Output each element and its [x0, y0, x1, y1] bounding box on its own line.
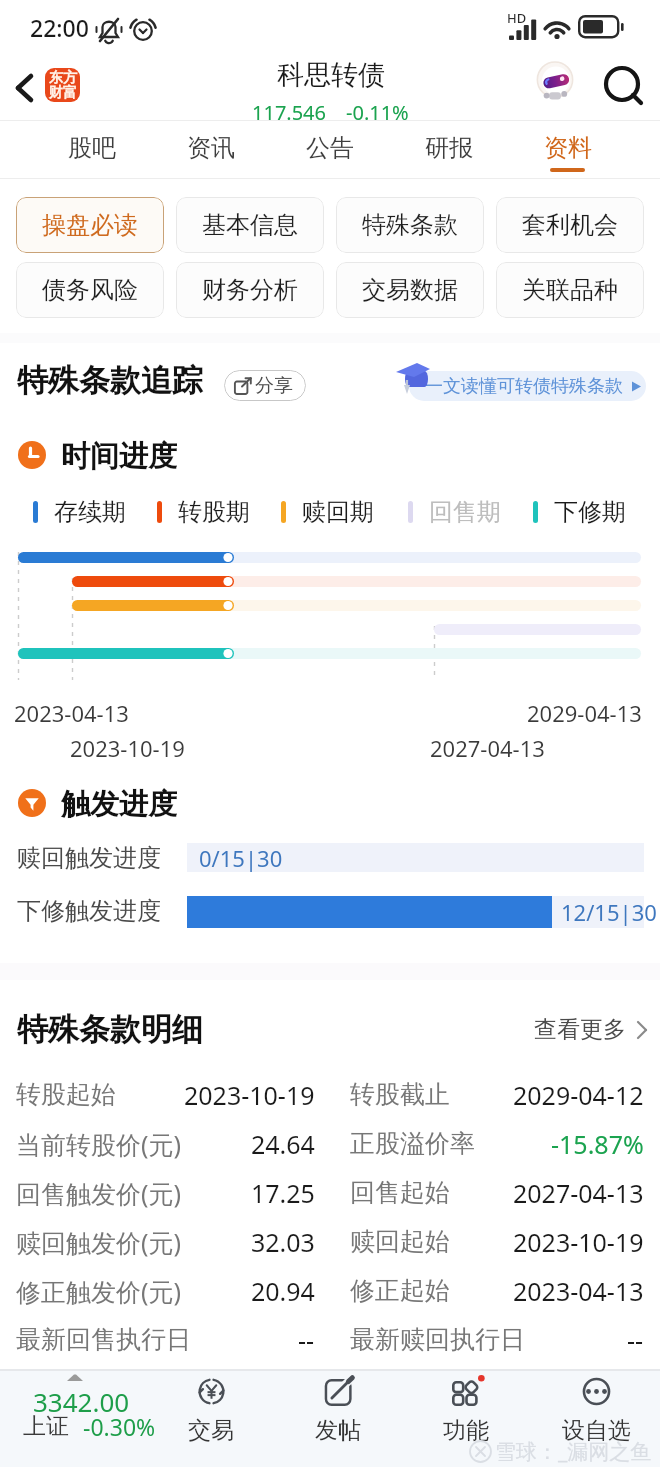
staticText: 正股溢价率: [350, 1128, 475, 1159]
staticText: 赎回起始: [350, 1226, 450, 1257]
staticText: 上证: [23, 1412, 69, 1441]
staticText: 东方 财富: [49, 69, 77, 101]
staticText: 发帖: [315, 1416, 361, 1445]
staticText: 24.64: [251, 1127, 315, 1161]
staticText: -0.30%: [83, 1411, 156, 1442]
staticText: 最新赎回执行日: [350, 1324, 525, 1355]
staticText: 交易: [188, 1416, 234, 1445]
staticText: 分享: [255, 374, 293, 398]
staticText: 赎回期: [302, 497, 374, 527]
staticText: 回售触发价(元): [16, 1176, 182, 1210]
staticText: 资讯: [187, 133, 235, 163]
staticText: 科思转债: [277, 58, 385, 92]
button[interactable]: 资讯: [151, 121, 270, 178]
button[interactable]: 套利机会: [496, 197, 644, 253]
staticText: 转股起始: [16, 1079, 116, 1110]
staticText: 0/15|30: [199, 843, 283, 872]
button[interactable]: 交易数据: [336, 262, 484, 318]
button[interactable]: 股吧: [33, 121, 151, 178]
staticText: --: [298, 1323, 315, 1357]
staticText: 下修触发进度: [17, 896, 161, 926]
staticText: 2029-04-13: [527, 698, 642, 728]
staticText: 特殊条款明细: [17, 1010, 203, 1049]
button[interactable]: 公告: [270, 121, 389, 178]
staticText: 12/15|30: [561, 897, 657, 927]
staticText: 查看更多: [534, 1015, 626, 1044]
staticText: 2023-10-19: [70, 733, 185, 763]
staticText: 赎回触发进度: [17, 843, 161, 873]
staticText: 修正起始: [350, 1275, 450, 1306]
staticText: 20.94: [251, 1274, 315, 1308]
staticText: 2027-04-13: [430, 733, 545, 763]
staticText: 22:00: [30, 12, 89, 43]
button[interactable]: 设自选: [533, 1369, 659, 1467]
staticText: -15.87%: [551, 1127, 644, 1161]
button[interactable]: 一文读懂可转债特殊条款: [409, 371, 646, 401]
staticText: 交易数据: [362, 275, 458, 305]
staticText: 财务分析: [202, 275, 298, 305]
staticText: 最新回售执行日: [16, 1324, 191, 1355]
button[interactable]: Back: [2, 66, 46, 110]
staticText: 修正触发价(元): [16, 1274, 182, 1308]
staticText: 基本信息: [202, 210, 298, 240]
button[interactable]: 查看更多: [534, 1015, 649, 1044]
staticText: 设自选: [562, 1416, 631, 1445]
button[interactable]: 特殊条款: [336, 197, 484, 253]
staticText: 当前转股价(元): [16, 1127, 182, 1161]
button[interactable]: 资料: [508, 121, 627, 178]
staticText: 债务风险: [42, 275, 138, 305]
button[interactable]: 交易: [148, 1369, 274, 1467]
button[interactable]: 3342.00: [0, 1369, 160, 1467]
button[interactable]: 关联品种: [496, 262, 644, 318]
button[interactable]: 基本信息: [176, 197, 324, 253]
staticText: 2023-10-19: [184, 1078, 315, 1112]
staticText: 32.03: [251, 1225, 315, 1259]
staticText: 2027-04-13: [513, 1176, 644, 1210]
staticText: 3342.00: [33, 1384, 130, 1419]
staticText: 2029-04-12: [513, 1078, 644, 1112]
staticText: -0.11%: [346, 99, 409, 122]
staticText: 公告: [306, 133, 354, 163]
staticText: 2023-10-19: [513, 1225, 644, 1259]
staticText: 关联品种: [522, 275, 618, 305]
staticText: 操盘必读: [42, 210, 138, 240]
staticText: 17.25: [251, 1176, 315, 1210]
staticText: 股吧: [68, 133, 116, 163]
staticText: 功能: [443, 1416, 489, 1445]
staticText: 赎回触发价(元): [16, 1225, 182, 1259]
staticText: 转股期: [178, 497, 250, 527]
staticText: 存续期: [54, 497, 126, 527]
staticText: 2023-04-13: [513, 1274, 644, 1308]
staticText: 2023-04-13: [14, 698, 129, 728]
staticText: 转股截止: [350, 1079, 450, 1110]
staticText: 回售起始: [350, 1177, 450, 1208]
staticText: 117.546: [252, 99, 326, 122]
button[interactable]: 分享: [224, 370, 306, 401]
staticText: 特殊条款追踪: [17, 361, 203, 400]
staticText: 下修期: [554, 497, 626, 527]
button[interactable]: 操盘必读: [16, 197, 164, 253]
staticText: 资料: [544, 133, 592, 163]
staticText: 时间进度: [61, 438, 177, 472]
button[interactable]: 发帖: [275, 1369, 401, 1467]
staticText: 触发进度: [61, 786, 177, 820]
button[interactable]: 债务风险: [16, 262, 164, 318]
staticText: 研报: [425, 133, 473, 163]
staticText: 雪球：_漏网之鱼: [495, 1437, 652, 1466]
staticText: --: [627, 1323, 644, 1357]
button[interactable]: 功能: [403, 1369, 529, 1467]
staticText: 回售期: [429, 497, 501, 527]
button[interactable]: AI assistant: [534, 62, 576, 104]
staticText: 特殊条款: [362, 210, 458, 240]
staticText: 一文读懂可转债特殊条款: [425, 375, 623, 398]
button[interactable]: 财务分析: [176, 262, 324, 318]
button[interactable]: Search: [598, 58, 648, 108]
staticText: HD: [507, 9, 527, 27]
button[interactable]: 研报: [389, 121, 508, 178]
staticText: 套利机会: [522, 210, 618, 240]
button[interactable]: East Money home: [45, 68, 80, 102]
